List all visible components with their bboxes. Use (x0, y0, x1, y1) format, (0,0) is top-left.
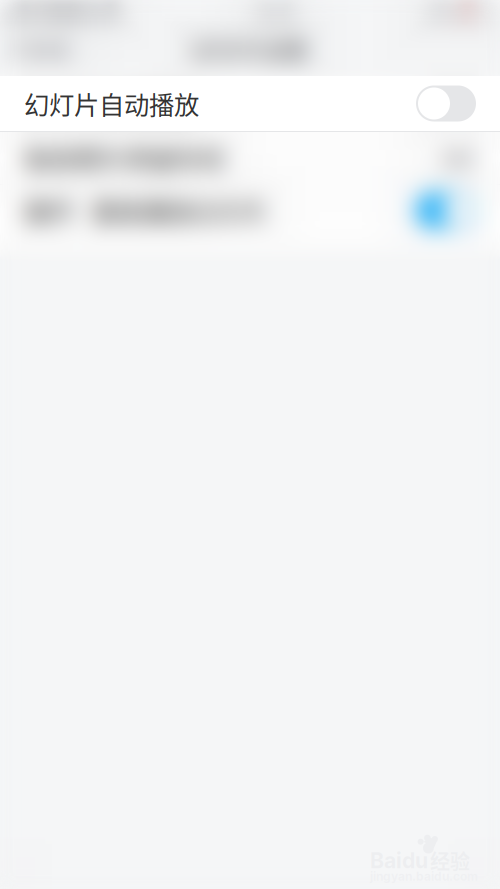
staticText: 幻灯片自动播放 (24, 85, 199, 122)
staticText: 相册 (28, 34, 70, 64)
button[interactable]: 幻灯片自动播放 (416, 85, 476, 121)
staticText: 23% (427, 2, 457, 24)
button[interactable]: 循环播放 (416, 192, 476, 228)
staticText: 幻灯片设置 (192, 33, 307, 65)
staticText: 3秒 (439, 141, 476, 175)
button[interactable]: 幻灯片自动播放 (0, 76, 500, 131)
staticText: 经验 (430, 846, 470, 875)
button[interactable]: 循环 重复播放幻灯片 (0, 185, 500, 236)
staticText: 每张照片停留时间 (24, 140, 224, 176)
staticText: 幻灯片自动播放 (24, 85, 199, 122)
button[interactable]: 每张照片停留时间 (0, 132, 500, 184)
button[interactable]: 幻灯片自动播放 (416, 85, 476, 121)
staticText: Baidu (370, 848, 428, 873)
staticText: 循环 重复播放幻灯片 (24, 192, 267, 229)
button[interactable]: 幻灯片自动播放 (0, 76, 500, 131)
button[interactable]: 返回相册 (0, 26, 81, 72)
staticText: 中国移动 (33, 1, 97, 25)
